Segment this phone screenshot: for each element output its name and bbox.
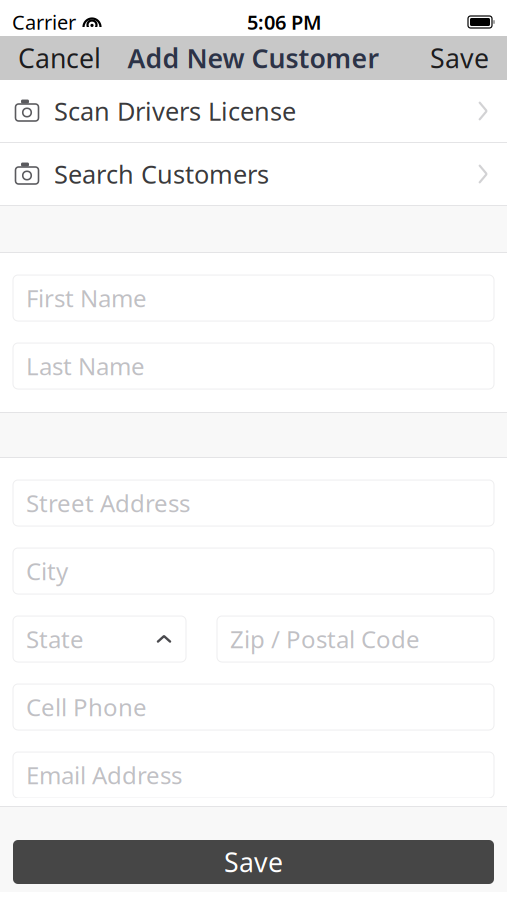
staticText: Save (224, 844, 283, 880)
staticText: Last Name (26, 350, 145, 382)
staticText: State (26, 623, 84, 655)
staticText: Add New Customer (127, 40, 379, 76)
button[interactable]: Save (13, 840, 494, 884)
staticText: Street Address (26, 487, 190, 519)
staticText: Search Customers (54, 157, 269, 191)
button[interactable]: Save (412, 36, 507, 80)
button[interactable]: Cancel (0, 36, 119, 80)
staticText: 5:06 PM (247, 9, 322, 35)
staticText: Cell Phone (26, 691, 147, 723)
staticText: Carrier (12, 9, 76, 35)
staticText: Scan Drivers License (54, 94, 296, 128)
staticText: Email Address (26, 759, 182, 791)
staticText: City (26, 555, 68, 587)
button[interactable]: Scan Drivers License (0, 80, 507, 142)
staticText: Zip / Postal Code (230, 623, 420, 655)
staticText: Save (430, 40, 489, 76)
staticText: First Name (26, 282, 147, 314)
staticText: Cancel (18, 40, 101, 76)
button[interactable]: Search Customers (0, 143, 507, 205)
